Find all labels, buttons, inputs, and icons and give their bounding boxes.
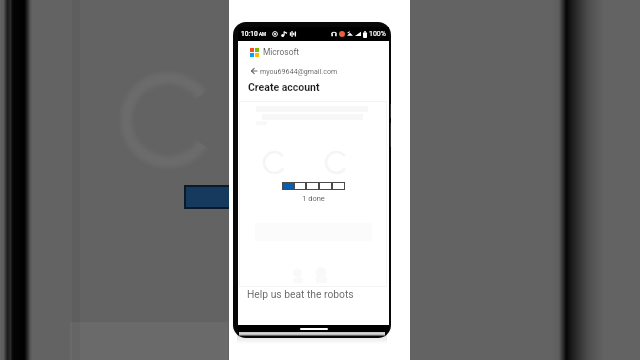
staticText: 1 done <box>238 194 389 203</box>
staticText: Create account <box>248 81 320 93</box>
other: Back <box>251 68 257 74</box>
staticText: Help us beat the robots <box>247 288 354 300</box>
staticText: Microsoft <box>263 47 300 57</box>
button[interactable]: Microsoft <box>249 46 301 58</box>
staticText: 100% <box>369 30 386 38</box>
staticText: 10:10 <box>241 30 258 38</box>
staticText: myou69644@gmail.com <box>260 67 338 75</box>
staticText: AM <box>259 32 267 37</box>
button[interactable]: Back <box>250 66 339 76</box>
